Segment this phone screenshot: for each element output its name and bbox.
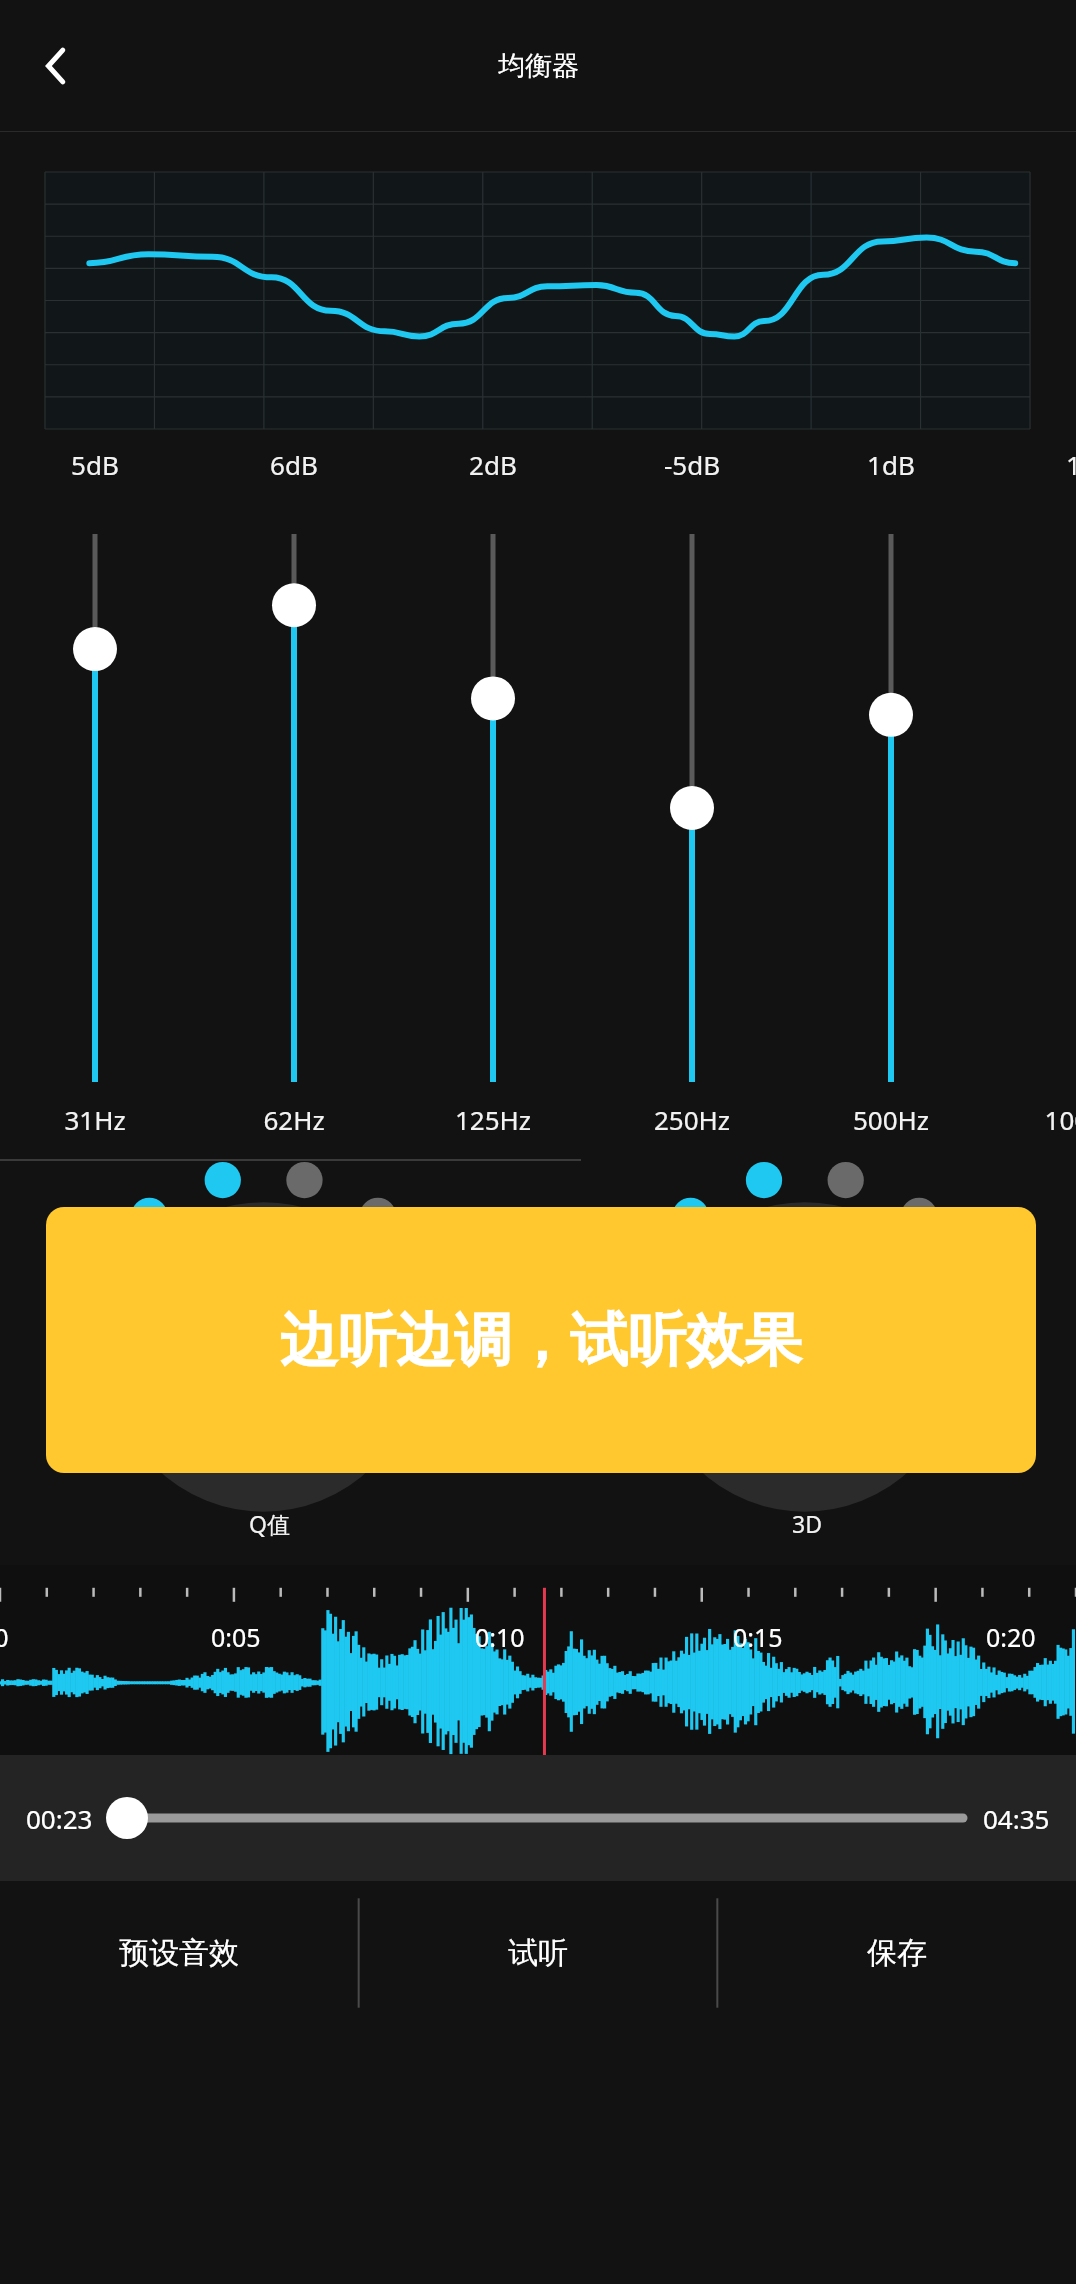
staticText: 6dB [214,447,374,482]
staticText: 边听边调，试听效果 [280,1304,802,1377]
staticText: 31Hz [15,1102,175,1137]
staticText: 04:35 [983,1801,1050,1836]
button[interactable]: 保存 [717,1881,1076,2025]
staticText: 0:05 [211,1620,261,1654]
button[interactable]: Back [16,30,88,102]
button[interactable]: 预设音效 [0,1881,358,2025]
staticText: 1dB [811,447,971,482]
staticText: 均衡器 [498,49,579,83]
staticText: 3D [792,1508,822,1539]
staticText: 62Hz [214,1102,374,1137]
staticText: 125Hz [413,1102,573,1137]
staticText: 00 [0,1620,9,1654]
button[interactable]: 边听边调，试听效果 [46,1207,1036,1473]
staticText: Q值 [249,1508,290,1539]
staticText: 0:15 [733,1620,783,1654]
staticText: 试听 [508,1934,568,1972]
staticText: 250Hz [612,1102,772,1137]
staticText: 00:23 [26,1801,93,1836]
staticText: 5dB [15,447,175,482]
staticText: 0:20 [986,1620,1036,1654]
staticText: 0:10 [475,1620,525,1654]
button[interactable] [105,1798,969,1838]
staticText: 1000Hz [1010,1102,1076,1137]
staticText: 2dB [413,447,573,482]
staticText: 1dB [1010,447,1076,482]
staticText: 500Hz [811,1102,971,1137]
staticText: 预设音效 [119,1934,239,1972]
button[interactable]: 试听 [358,1881,717,2025]
staticText: -5dB [612,447,772,482]
staticText: 保存 [867,1934,927,1972]
